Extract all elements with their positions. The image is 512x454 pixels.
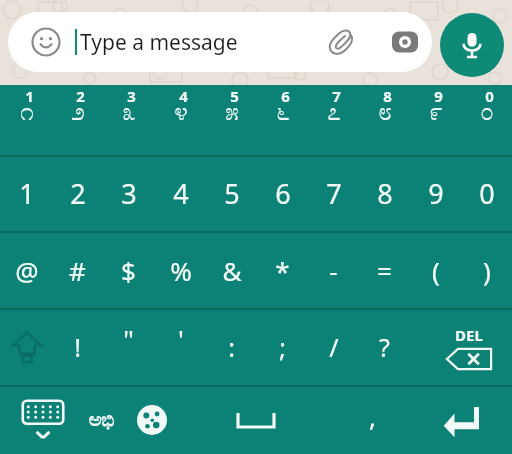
staticText: ೫ bbox=[225, 101, 239, 125]
button[interactable]: 9 bbox=[410, 85, 461, 155]
button[interactable]: Attach bbox=[320, 20, 364, 64]
button[interactable]: : bbox=[206, 309, 257, 385]
button[interactable]: / bbox=[308, 309, 359, 385]
button[interactable]: 5 bbox=[206, 85, 257, 155]
staticText: ? bbox=[379, 330, 390, 364]
staticText: - bbox=[329, 253, 338, 288]
staticText: ೯ bbox=[429, 101, 443, 125]
button[interactable]: = bbox=[359, 232, 410, 308]
button[interactable]: 8 bbox=[359, 85, 410, 155]
button[interactable]: Language bbox=[76, 386, 128, 454]
staticText: , bbox=[369, 399, 376, 434]
button[interactable]: 9 bbox=[410, 156, 461, 231]
staticText: 2 bbox=[76, 86, 85, 106]
staticText: : bbox=[228, 330, 235, 364]
staticText: DEL bbox=[455, 325, 483, 345]
staticText: 2 bbox=[70, 175, 86, 212]
staticText: 9 bbox=[434, 86, 443, 106]
button[interactable]: Shift bbox=[1, 309, 52, 385]
button[interactable]: 1 bbox=[1, 85, 52, 155]
staticText: ೧ bbox=[20, 101, 34, 125]
button[interactable]: 4 bbox=[155, 156, 206, 231]
button[interactable]: ; bbox=[257, 309, 308, 385]
staticText: & bbox=[222, 253, 242, 288]
button[interactable]: 3 bbox=[103, 156, 154, 231]
button[interactable]: Delete bbox=[426, 309, 512, 385]
staticText: 9 bbox=[428, 175, 444, 212]
button[interactable]: Enter bbox=[428, 386, 494, 454]
button[interactable]: 6 bbox=[257, 85, 308, 155]
button[interactable]: Voice message bbox=[440, 13, 504, 77]
button[interactable]: 8 bbox=[359, 156, 410, 231]
button[interactable]: 6 bbox=[257, 156, 308, 231]
staticText: ! bbox=[74, 330, 81, 364]
button[interactable]: ) bbox=[461, 232, 512, 308]
staticText: ೭ bbox=[327, 101, 341, 125]
button[interactable]: Camera bbox=[383, 20, 427, 64]
staticText: ೦ bbox=[480, 101, 494, 125]
button[interactable]: $ bbox=[103, 232, 154, 308]
staticText: ೪ bbox=[174, 101, 188, 125]
button[interactable]: Emoji bbox=[8, 12, 432, 72]
button[interactable]: Emoji bbox=[24, 20, 68, 64]
staticText: 5 bbox=[230, 86, 239, 106]
staticText: 8 bbox=[383, 86, 392, 106]
button[interactable]: 1 bbox=[1, 156, 52, 231]
staticText: ಅಭಿ bbox=[89, 411, 115, 430]
staticText: ೩ bbox=[122, 101, 136, 125]
button[interactable]: Hide keyboard bbox=[12, 386, 74, 454]
staticText: 4 bbox=[173, 175, 189, 212]
button[interactable]: 0 bbox=[461, 85, 512, 155]
staticText: 3 bbox=[127, 86, 136, 106]
button[interactable]: @ bbox=[1, 232, 52, 308]
staticText: ೮ bbox=[378, 101, 392, 125]
staticText: 8 bbox=[377, 175, 393, 212]
button[interactable]: & bbox=[206, 232, 257, 308]
button[interactable]: 2 bbox=[52, 156, 103, 231]
button[interactable]: * bbox=[257, 232, 308, 308]
button[interactable]: 3 bbox=[103, 85, 154, 155]
button[interactable]: # bbox=[52, 232, 103, 308]
staticText: 1 bbox=[19, 175, 35, 212]
button[interactable]: ? bbox=[359, 309, 410, 385]
staticText: / bbox=[329, 330, 339, 364]
staticText: 5 bbox=[224, 175, 240, 212]
button[interactable]: " bbox=[103, 309, 154, 385]
staticText: 6 bbox=[281, 86, 290, 106]
staticText: Type a message bbox=[80, 28, 238, 57]
staticText: 3 bbox=[121, 175, 137, 212]
button[interactable]: 7 bbox=[308, 156, 359, 231]
button[interactable]: % bbox=[155, 232, 206, 308]
staticText: ; bbox=[279, 330, 286, 364]
staticText: $ bbox=[121, 253, 136, 288]
staticText: 0 bbox=[479, 175, 495, 212]
staticText: ೬ bbox=[276, 101, 290, 125]
staticText: 1 bbox=[25, 86, 34, 106]
staticText: ' bbox=[178, 321, 184, 356]
staticText: ೨ bbox=[71, 101, 85, 125]
staticText: * bbox=[275, 253, 290, 288]
button[interactable]: ( bbox=[410, 232, 461, 308]
staticText: 0 bbox=[485, 86, 494, 106]
button[interactable]: Space bbox=[182, 386, 330, 454]
button[interactable]: 5 bbox=[206, 156, 257, 231]
staticText: # bbox=[69, 253, 86, 288]
staticText: 6 bbox=[275, 175, 291, 212]
button[interactable]: 4 bbox=[155, 85, 206, 155]
button[interactable]: 7 bbox=[308, 85, 359, 155]
staticText: ( bbox=[432, 253, 440, 288]
button[interactable]: 2 bbox=[52, 85, 103, 155]
staticText: " bbox=[123, 321, 134, 356]
staticText: @ bbox=[15, 253, 39, 288]
button[interactable]: , bbox=[346, 386, 398, 454]
staticText: 7 bbox=[326, 175, 342, 212]
button[interactable]: ! bbox=[52, 309, 103, 385]
staticText: 7 bbox=[332, 86, 341, 106]
button[interactable]: - bbox=[308, 232, 359, 308]
staticText: % bbox=[170, 253, 192, 288]
button[interactable]: Switch input language bbox=[128, 386, 176, 454]
button[interactable]: 0 bbox=[461, 156, 512, 231]
staticText: 4 bbox=[179, 86, 188, 106]
button[interactable]: ' bbox=[155, 309, 206, 385]
staticText: = bbox=[377, 253, 392, 288]
